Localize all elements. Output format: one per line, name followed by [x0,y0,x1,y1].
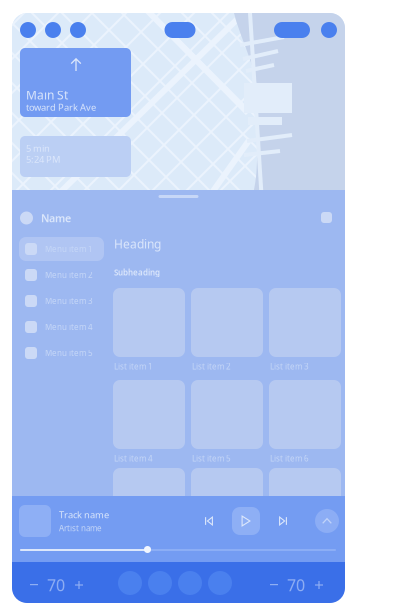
button[interactable]: Now playing: Track name [19,505,169,537]
button[interactable]: Favourites [70,22,86,38]
staticText: 5 min [26,142,50,154]
button[interactable]: Maps [178,571,202,595]
staticText: List item 4 [114,453,153,464]
button[interactable]: List item 2 [191,288,263,368]
button[interactable]: Menu item 2 [19,263,104,287]
button[interactable]: Profile [20,22,36,38]
button[interactable]: List item 4 [113,380,185,460]
staticText: Track name [59,508,109,521]
button[interactable]: Menu item 4 [19,315,104,339]
staticText: Menu item 4 [45,322,93,332]
button[interactable]: Phone [118,571,142,595]
button[interactable]: More [321,22,337,38]
staticText: List item 5 [192,453,231,464]
button[interactable]: Decrease temperature [266,578,282,592]
button[interactable]: List item 1 [113,288,185,368]
button[interactable]: Play [232,507,260,535]
button[interactable]: Next track [273,511,293,531]
button[interactable]: List item 5 [191,380,263,460]
button[interactable]: Messages [208,571,232,595]
staticText: Menu item 2 [45,270,93,280]
staticText: Menu item 1 [45,244,93,254]
staticText: List item 6 [270,453,309,464]
staticText: List item 2 [192,361,231,372]
staticText: 70 [287,574,305,596]
button[interactable]: List item 6 [269,380,341,460]
staticText: List item 1 [114,361,153,372]
staticText: Main St [26,87,68,103]
button[interactable]: Destination [164,22,195,38]
staticText: Menu item 5 [45,348,93,358]
button[interactable]: Menu item 5 [19,341,104,365]
staticText: 70 [47,574,65,596]
button[interactable]: Increase temperature [71,578,87,592]
staticText: Artist name [59,523,102,533]
staticText: Name [41,211,71,225]
button[interactable] [191,468,263,548]
button[interactable]: Music [148,571,172,595]
staticText: Menu item 3 [45,296,93,306]
button[interactable]: Options [321,212,332,223]
button[interactable]: Menu item 1 [19,237,104,261]
button[interactable]: Increase temperature [311,578,327,592]
staticText: 5:24 PM [26,153,60,165]
button[interactable] [113,468,185,548]
button[interactable]: Decrease temperature [26,578,42,592]
button[interactable] [269,468,341,548]
staticText: Subheading [114,267,160,278]
button[interactable]: Menu item 3 [19,289,104,313]
button[interactable]: Previous track [199,511,219,531]
button[interactable]: Account [20,210,104,226]
staticText: toward Park Ave [26,101,96,113]
button[interactable]: Search [45,22,61,38]
button[interactable]: Route options [274,22,310,38]
staticText: Heading [114,236,161,252]
staticText: List item 3 [270,361,309,372]
button[interactable]: List item 3 [269,288,341,368]
button[interactable]: Expand player [315,509,339,533]
